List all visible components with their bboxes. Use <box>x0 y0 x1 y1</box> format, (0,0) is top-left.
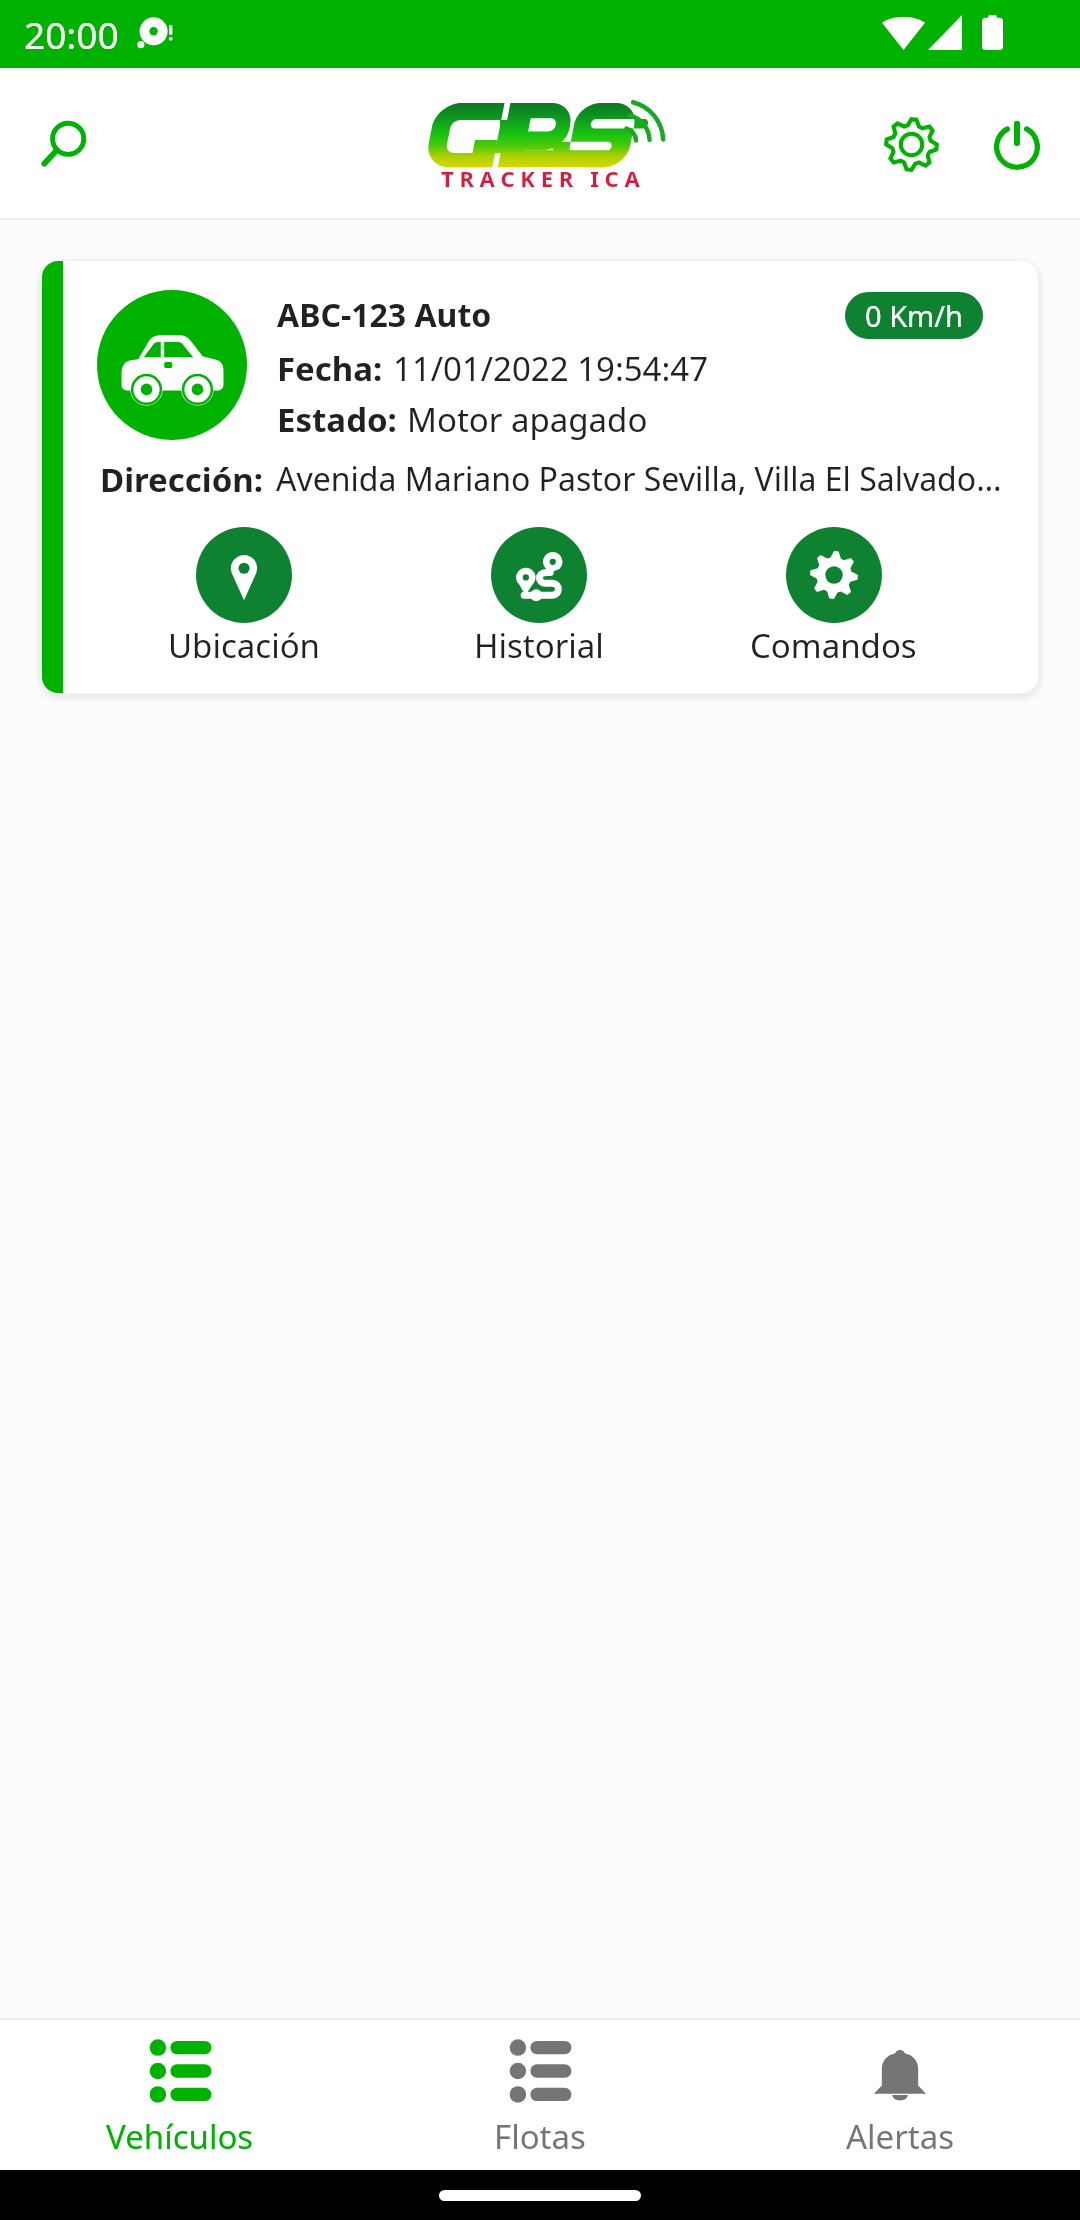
button[interactable]: Vehículos <box>0 2020 360 2170</box>
button[interactable]: Historial <box>391 527 686 668</box>
staticText: 0 Km/h <box>865 296 963 335</box>
staticText: ABC-123 Auto <box>277 293 492 337</box>
button[interactable]: Ubicación <box>97 527 391 668</box>
staticText: T R A C K E R I C A <box>441 163 640 193</box>
button[interactable]: Flotas <box>360 2020 720 2170</box>
staticText: Comandos <box>750 623 917 668</box>
staticText: Ubicación <box>168 623 320 668</box>
staticText: 11/01/2022 19:54:47 <box>393 346 709 391</box>
button[interactable]: Buscar <box>16 96 112 192</box>
staticText: 20:00 <box>24 9 119 59</box>
staticText: Fecha: <box>277 346 383 391</box>
staticText: Dirección: <box>100 457 264 502</box>
staticText: Vehículos <box>106 2114 254 2159</box>
other: Velocidad <box>865 296 963 335</box>
staticText: Historial <box>474 623 604 668</box>
staticText: Estado: <box>277 397 397 442</box>
button[interactable]: Alertas <box>720 2020 1080 2170</box>
staticText: Avenida Mariano Pastor Sevilla, Villa El… <box>276 457 1002 501</box>
button[interactable]: ABC-123 Auto <box>42 261 1038 693</box>
staticText: Motor apagado <box>407 397 648 442</box>
button[interactable]: Cerrar sesión <box>966 96 1062 192</box>
button[interactable]: Comandos <box>686 527 981 668</box>
staticText: Flotas <box>494 2114 586 2159</box>
button[interactable]: Configuración <box>870 96 966 192</box>
staticText: Alertas <box>846 2114 955 2159</box>
